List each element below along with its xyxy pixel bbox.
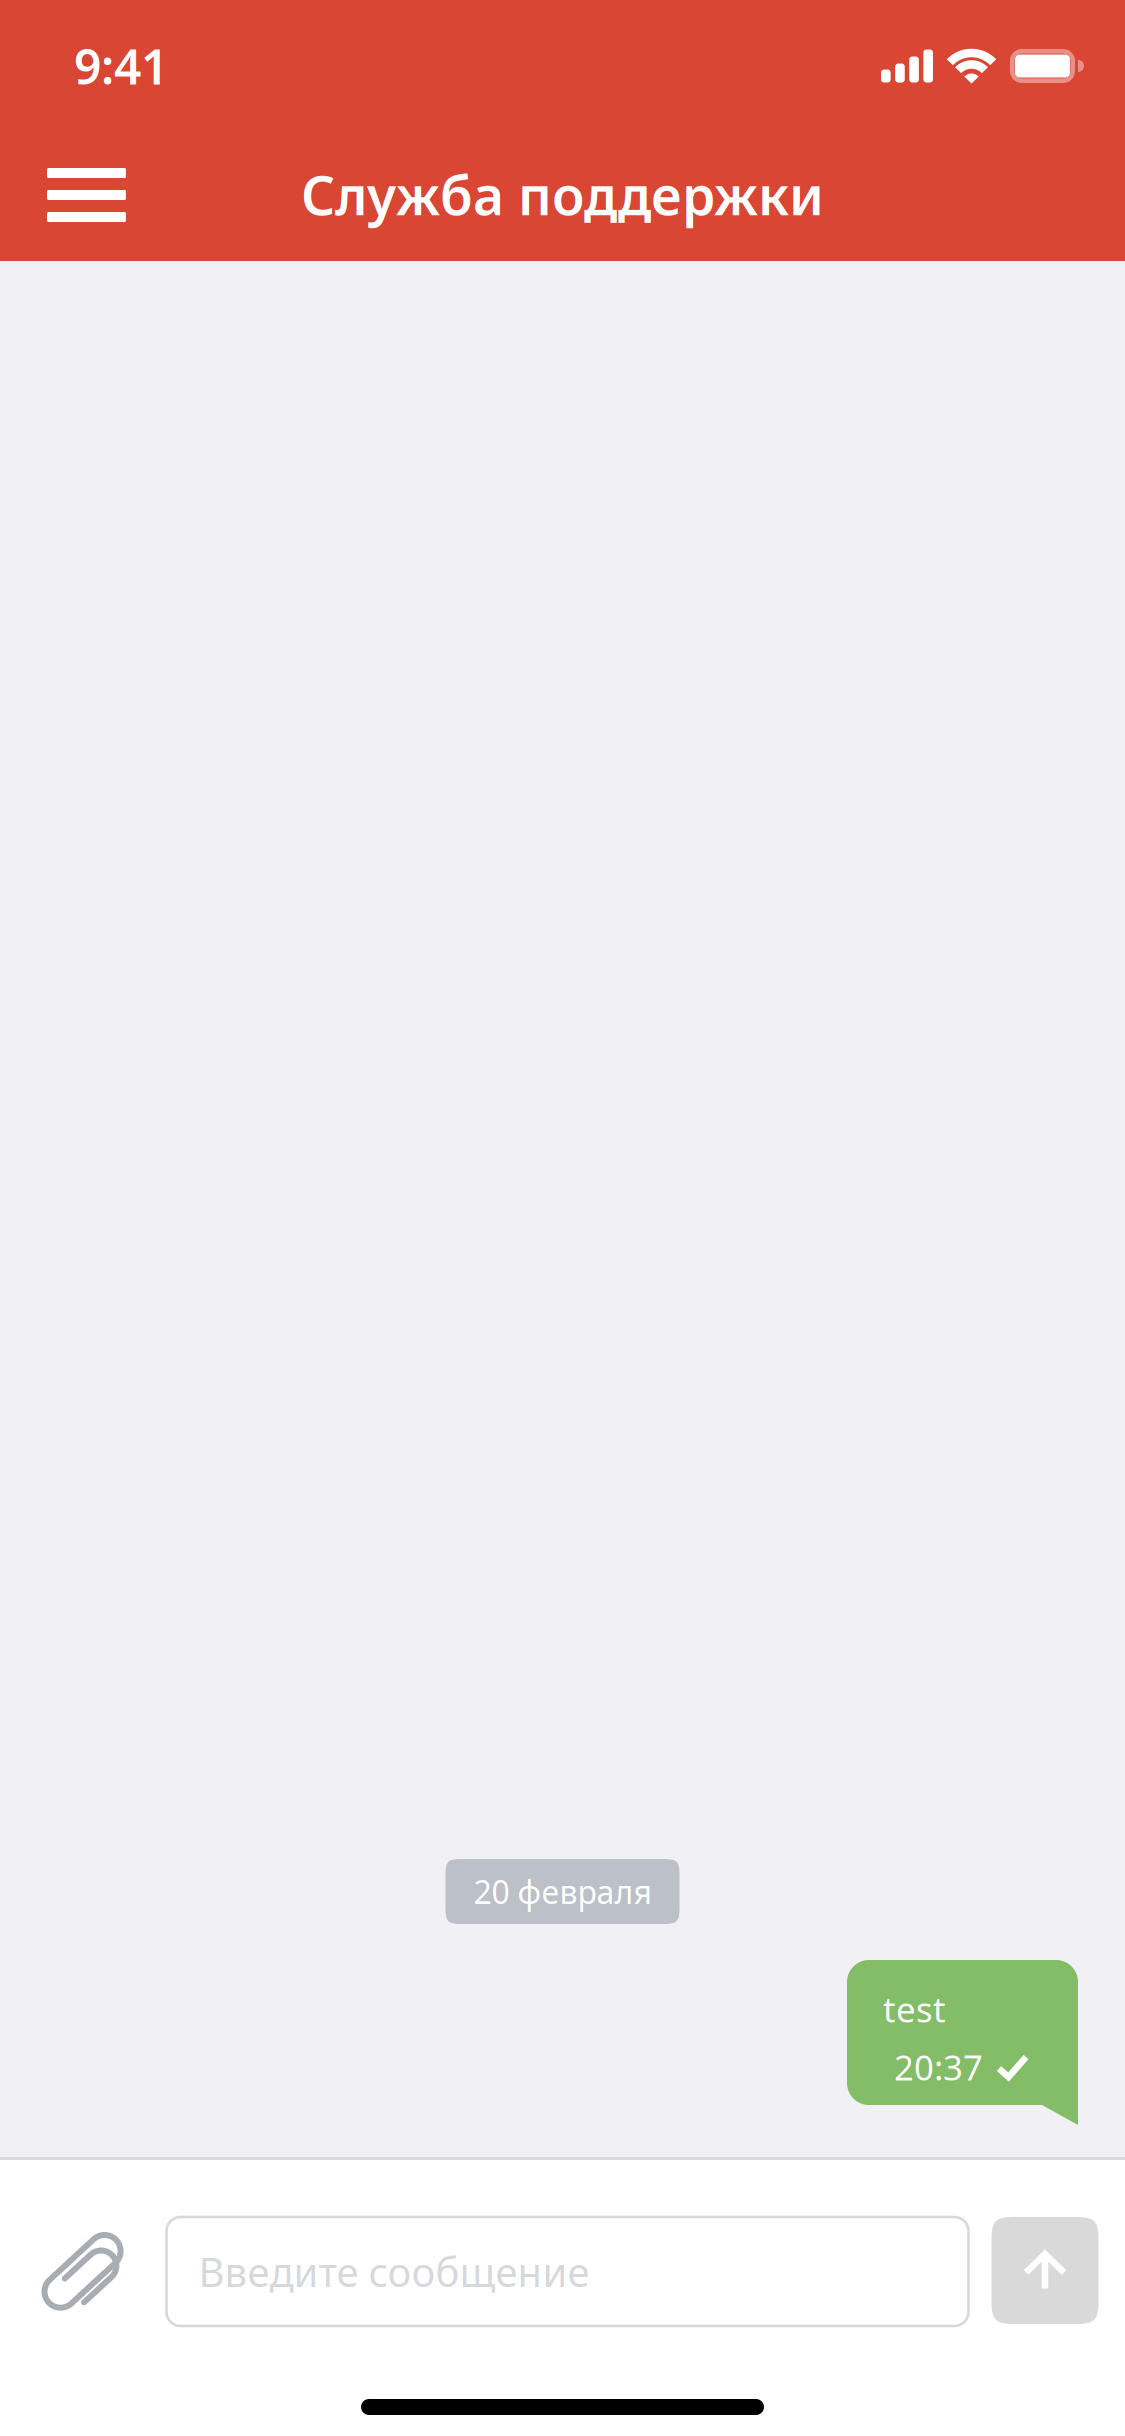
button[interactable]: Введите сообщение: [166, 2217, 968, 2326]
staticText: 9:41: [74, 34, 168, 98]
staticText: 20 февраля: [473, 1870, 651, 1913]
button[interactable]: Send: [991, 2217, 1098, 2324]
staticText: 20:37: [894, 2044, 983, 2090]
button[interactable]: Attach file: [0, 2217, 166, 2334]
button[interactable]: Menu: [0, 132, 166, 261]
staticText: Служба поддержки: [301, 159, 824, 230]
staticText: test: [883, 1986, 946, 2032]
staticText: Введите сообщение: [198, 2245, 589, 2298]
